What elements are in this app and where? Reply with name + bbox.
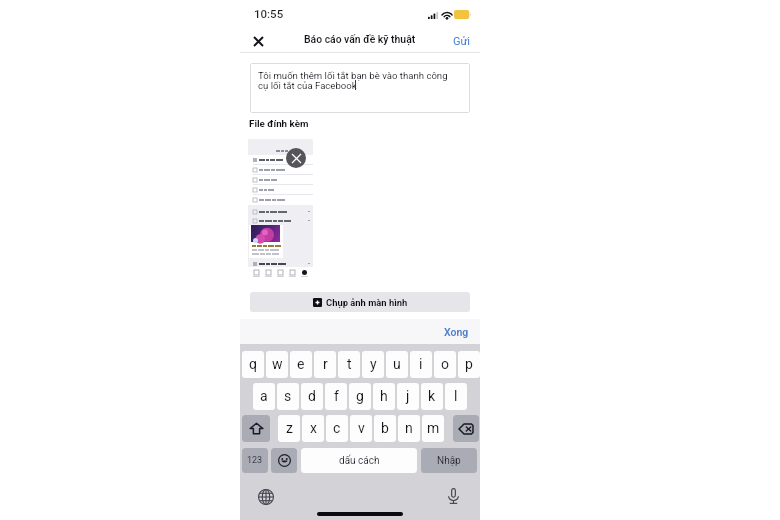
staticText: s bbox=[284, 388, 292, 404]
button[interactable]: n bbox=[398, 415, 420, 442]
button[interactable]: Tôi muốn thêm lối tắt bạn bè vào thanh c… bbox=[250, 63, 470, 113]
staticText: g bbox=[356, 388, 364, 404]
button[interactable]: d bbox=[301, 383, 323, 410]
staticText: q bbox=[249, 356, 257, 372]
staticText: d bbox=[308, 388, 316, 404]
staticText: o bbox=[441, 356, 449, 372]
button[interactable]: p bbox=[458, 351, 480, 378]
staticText: i bbox=[419, 356, 423, 372]
button[interactable]: Emoji bbox=[271, 448, 297, 473]
button[interactable]: k bbox=[421, 383, 443, 410]
staticText: Chụp ảnh màn hình bbox=[326, 297, 408, 308]
staticText: 10:55 bbox=[254, 7, 284, 20]
staticText: k bbox=[428, 388, 436, 404]
staticText: v bbox=[358, 420, 365, 436]
staticText: Báo cáo vấn đề kỹ thuật bbox=[304, 33, 416, 45]
button[interactable]: v bbox=[350, 415, 372, 442]
staticText: m bbox=[427, 420, 440, 436]
staticText: t bbox=[347, 356, 352, 372]
button[interactable]: l bbox=[445, 383, 467, 410]
staticText: l bbox=[454, 388, 458, 404]
button[interactable]: Chụp ảnh màn hình bbox=[250, 292, 470, 312]
button[interactable]: r bbox=[314, 351, 336, 378]
button[interactable]: s bbox=[277, 383, 299, 410]
button[interactable]: a bbox=[253, 383, 275, 410]
button[interactable]: u bbox=[386, 351, 408, 378]
button[interactable]: i bbox=[410, 351, 432, 378]
button[interactable]: Xong bbox=[433, 322, 480, 342]
staticText: u bbox=[393, 356, 401, 372]
button[interactable]: z bbox=[278, 415, 300, 442]
staticText: h bbox=[380, 388, 388, 404]
staticText: x bbox=[310, 420, 317, 436]
button[interactable]: Shift bbox=[242, 415, 270, 442]
button[interactable]: Gửi bbox=[443, 32, 480, 51]
button[interactable]: f bbox=[325, 383, 347, 410]
staticText: n bbox=[405, 420, 413, 436]
staticText: Xong bbox=[444, 326, 469, 338]
staticText: z bbox=[286, 420, 293, 436]
button[interactable]: dấu cách bbox=[301, 448, 417, 473]
staticText: j bbox=[406, 388, 410, 404]
staticText: w bbox=[272, 356, 283, 372]
button[interactable]: Dictation bbox=[443, 486, 463, 506]
staticText: y bbox=[370, 356, 377, 372]
staticText: 123 bbox=[247, 455, 263, 466]
button[interactable]: 123 bbox=[242, 448, 268, 473]
button[interactable]: h bbox=[373, 383, 395, 410]
staticText: a bbox=[260, 388, 268, 404]
staticText: Gửi bbox=[453, 35, 470, 48]
button[interactable]: c bbox=[326, 415, 348, 442]
button[interactable]: o bbox=[434, 351, 456, 378]
button[interactable]: x bbox=[302, 415, 324, 442]
button[interactable]: q bbox=[242, 351, 264, 378]
button[interactable]: Nhập bbox=[421, 448, 477, 473]
button[interactable]: Close bbox=[248, 31, 268, 51]
button[interactable]: m bbox=[422, 415, 444, 442]
button[interactable]: Backspace bbox=[453, 415, 479, 442]
staticText: b bbox=[381, 420, 389, 436]
button[interactable]: e bbox=[290, 351, 312, 378]
staticText: r bbox=[323, 356, 328, 372]
button[interactable]: w bbox=[266, 351, 288, 378]
staticText: dấu cách bbox=[339, 455, 380, 467]
button[interactable]: b bbox=[374, 415, 396, 442]
button[interactable]: Change keyboard bbox=[256, 487, 276, 507]
staticText: e bbox=[297, 356, 305, 372]
staticText: p bbox=[465, 356, 473, 372]
button[interactable]: j bbox=[397, 383, 419, 410]
staticText: f bbox=[334, 388, 339, 404]
button[interactable]: t bbox=[338, 351, 360, 378]
staticText: Tôi muốn thêm lối tắt bạn bè vào thanh c… bbox=[258, 70, 454, 92]
staticText: c bbox=[333, 420, 341, 436]
staticText: File đính kèm bbox=[249, 118, 309, 129]
button[interactable]: y bbox=[362, 351, 384, 378]
staticText: Nhập bbox=[437, 455, 461, 467]
button[interactable]: g bbox=[349, 383, 371, 410]
button[interactable] bbox=[248, 139, 313, 279]
button[interactable]: Remove attachment bbox=[286, 148, 306, 168]
